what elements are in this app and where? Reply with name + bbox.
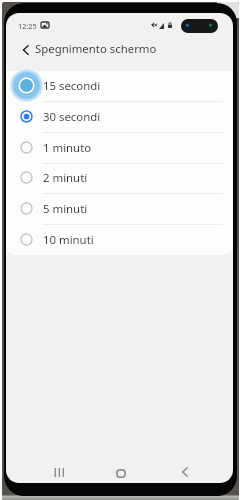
staticText: Spegnimento schermo: [35, 41, 157, 57]
button[interactable]: 15 secondi: [6, 70, 233, 101]
button[interactable]: 2 minuti: [6, 162, 233, 193]
button[interactable]: 10 minuti: [6, 224, 233, 255]
button[interactable]: 5 minuti: [6, 193, 233, 224]
staticText: 5 minuti: [43, 201, 88, 217]
staticText: 10 minuti: [43, 232, 94, 248]
staticText: 12:25: [18, 21, 37, 31]
button[interactable]: Back: [15, 39, 37, 61]
staticText: 1 minuto: [43, 140, 92, 156]
button[interactable]: Back: [161, 460, 209, 483]
staticText: 15 secondi: [43, 78, 101, 94]
button[interactable]: 1 minuto: [6, 132, 233, 163]
staticText: 2 minuti: [43, 170, 88, 186]
button[interactable]: Home: [97, 461, 145, 483]
button[interactable]: Recent apps: [35, 460, 83, 483]
staticText: 30 secondi: [43, 109, 101, 125]
button[interactable]: 30 secondi: [6, 101, 233, 132]
